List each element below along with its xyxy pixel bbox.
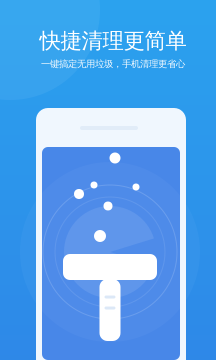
staticText: 快捷清理更简单: [39, 28, 186, 54]
staticText: 一键搞定无用垃圾，手机清理更省心: [41, 58, 185, 70]
